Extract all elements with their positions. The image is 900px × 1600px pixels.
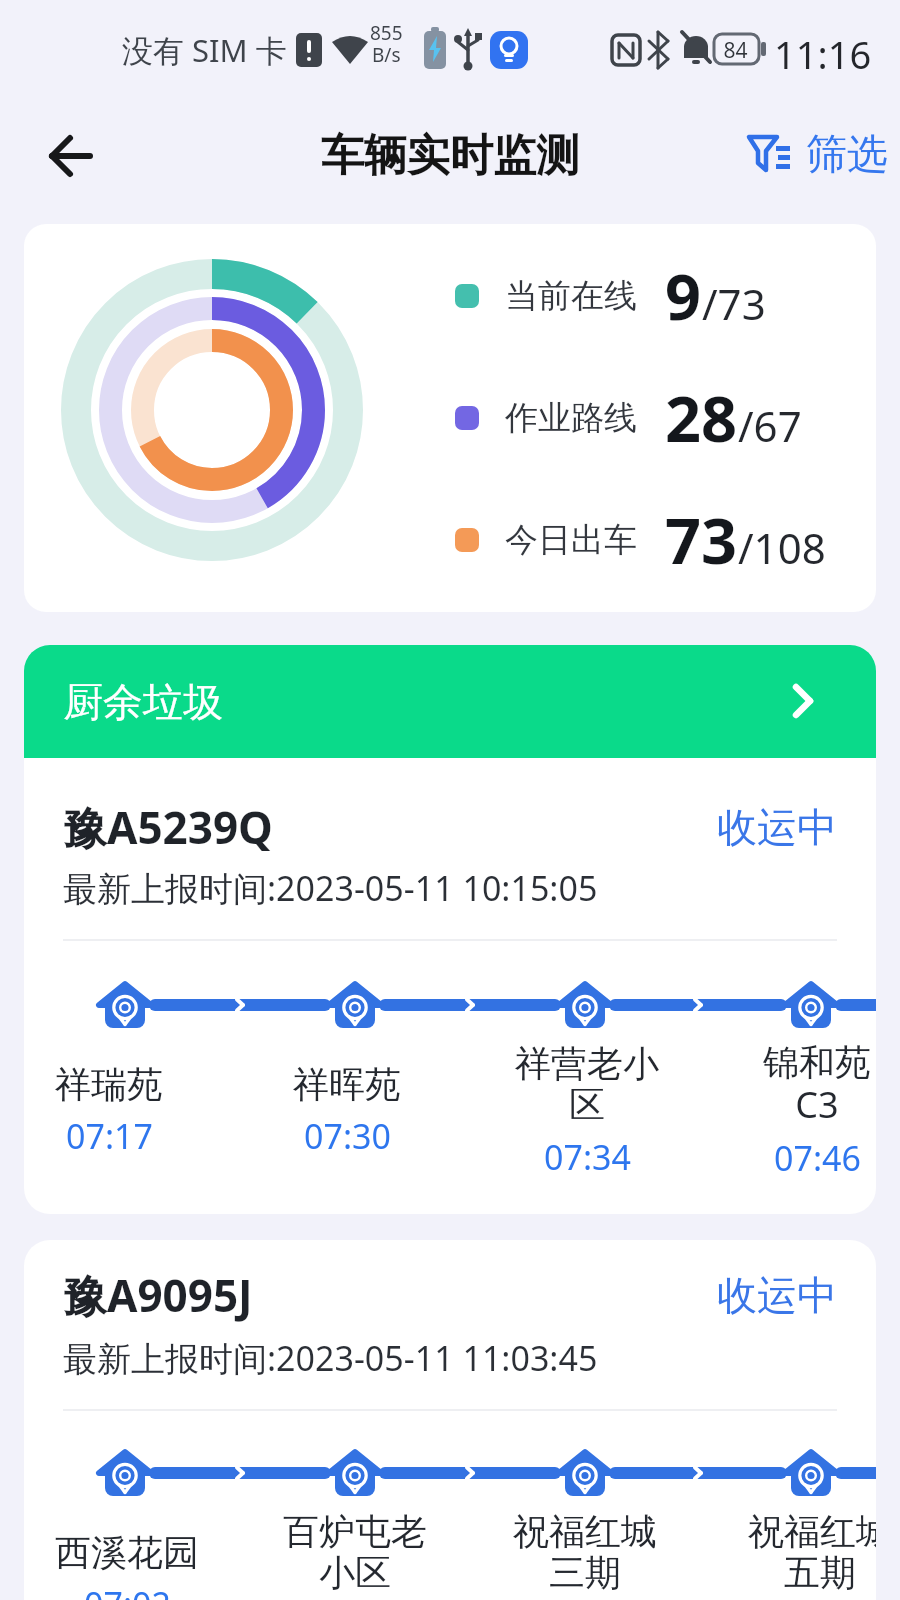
staticText: 84 — [723, 36, 748, 65]
staticText: 今日出车 — [505, 519, 637, 561]
staticText: 没有 SIM 卡 — [122, 29, 287, 71]
staticText: 百炉屯老小区 — [280, 1509, 430, 1596]
button[interactable]: 厨余垃圾 — [24, 645, 876, 758]
staticText: 11:16 — [774, 28, 872, 72]
button[interactable] — [40, 126, 100, 186]
staticText: 祝福红城五期 — [745, 1509, 876, 1596]
staticText: 祝福红城三期 — [510, 1509, 660, 1596]
staticText: 07:17 — [66, 1113, 153, 1159]
button[interactable]: 筛选 — [740, 124, 890, 186]
staticText: 豫A5239Q — [63, 797, 273, 857]
staticText: 祥营老小区 — [512, 1041, 662, 1128]
staticText: 73 — [665, 497, 738, 583]
staticText: /67 — [738, 397, 802, 454]
staticText: 豫A9095J — [63, 1265, 253, 1325]
staticText: 07:46 — [774, 1135, 861, 1181]
staticText: 作业路线 — [505, 397, 637, 439]
staticText: 最新上报时间:2023-05-11 10:15:05 — [63, 865, 598, 911]
staticText: 厨余垃圾 — [63, 677, 223, 727]
button[interactable]: 豫A9095J — [24, 1240, 876, 1600]
staticText: 07:30 — [304, 1113, 391, 1159]
staticText: 车辆实时监测 — [321, 129, 579, 183]
staticText: 28 — [665, 375, 738, 461]
staticText: 最新上报时间:2023-05-11 11:03:45 — [63, 1335, 598, 1381]
staticText: 筛选 — [806, 129, 888, 181]
staticText: B/s — [372, 42, 401, 66]
staticText: 收运中 — [717, 802, 837, 852]
staticText: 07:02 — [84, 1581, 171, 1600]
staticText: 西溪花园 — [55, 1530, 199, 1575]
staticText: 当前在线 — [505, 275, 637, 317]
staticText: /108 — [738, 519, 826, 576]
staticText: 9 — [665, 253, 702, 339]
button[interactable]: 豫A5239Q — [24, 758, 876, 1214]
staticText: 锦和苑C3 — [742, 1040, 876, 1129]
staticText: /73 — [702, 275, 766, 332]
staticText: 855 — [370, 20, 403, 46]
staticText: 祥晖苑 — [293, 1062, 401, 1107]
staticText: 07:34 — [544, 1134, 631, 1180]
staticText: 收运中 — [717, 1270, 837, 1320]
staticText: 祥瑞苑 — [55, 1062, 163, 1107]
